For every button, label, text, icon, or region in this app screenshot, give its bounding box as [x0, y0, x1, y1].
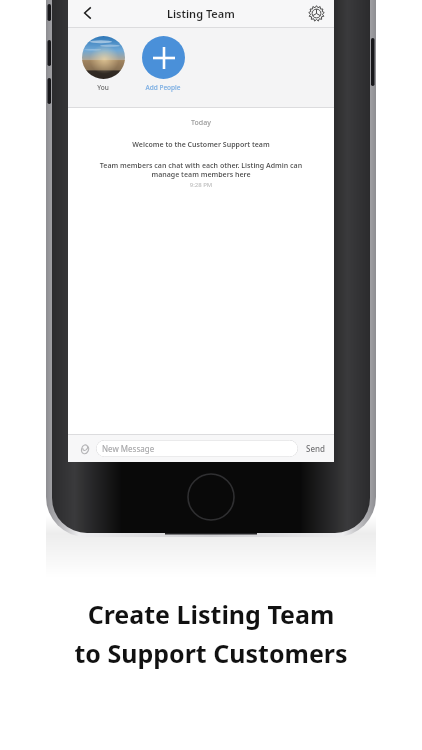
staticText: Create Listing Team	[0, 597, 422, 631]
button[interactable]: Settings	[304, 1, 328, 25]
staticText: Today	[82, 118, 320, 128]
button[interactable]: Attach file	[74, 439, 94, 459]
button[interactable]: Back	[76, 1, 100, 25]
staticText: Team members can chat with each other. L…	[86, 161, 316, 179]
staticText: Listing Team	[167, 6, 235, 21]
staticText: Welcome to the Customer Support team	[82, 140, 320, 150]
staticText: Send	[306, 443, 325, 454]
staticText: 9:28 PM	[82, 181, 320, 189]
staticText: New Message	[102, 443, 155, 454]
staticText: to Support Customers	[0, 636, 422, 670]
staticText: You	[78, 83, 128, 92]
button[interactable]: Send	[303, 440, 328, 457]
button[interactable]: You	[78, 34, 128, 94]
button[interactable]: Add People	[138, 34, 188, 94]
staticText: Add People	[138, 83, 188, 92]
button[interactable]: New Message	[96, 440, 298, 457]
